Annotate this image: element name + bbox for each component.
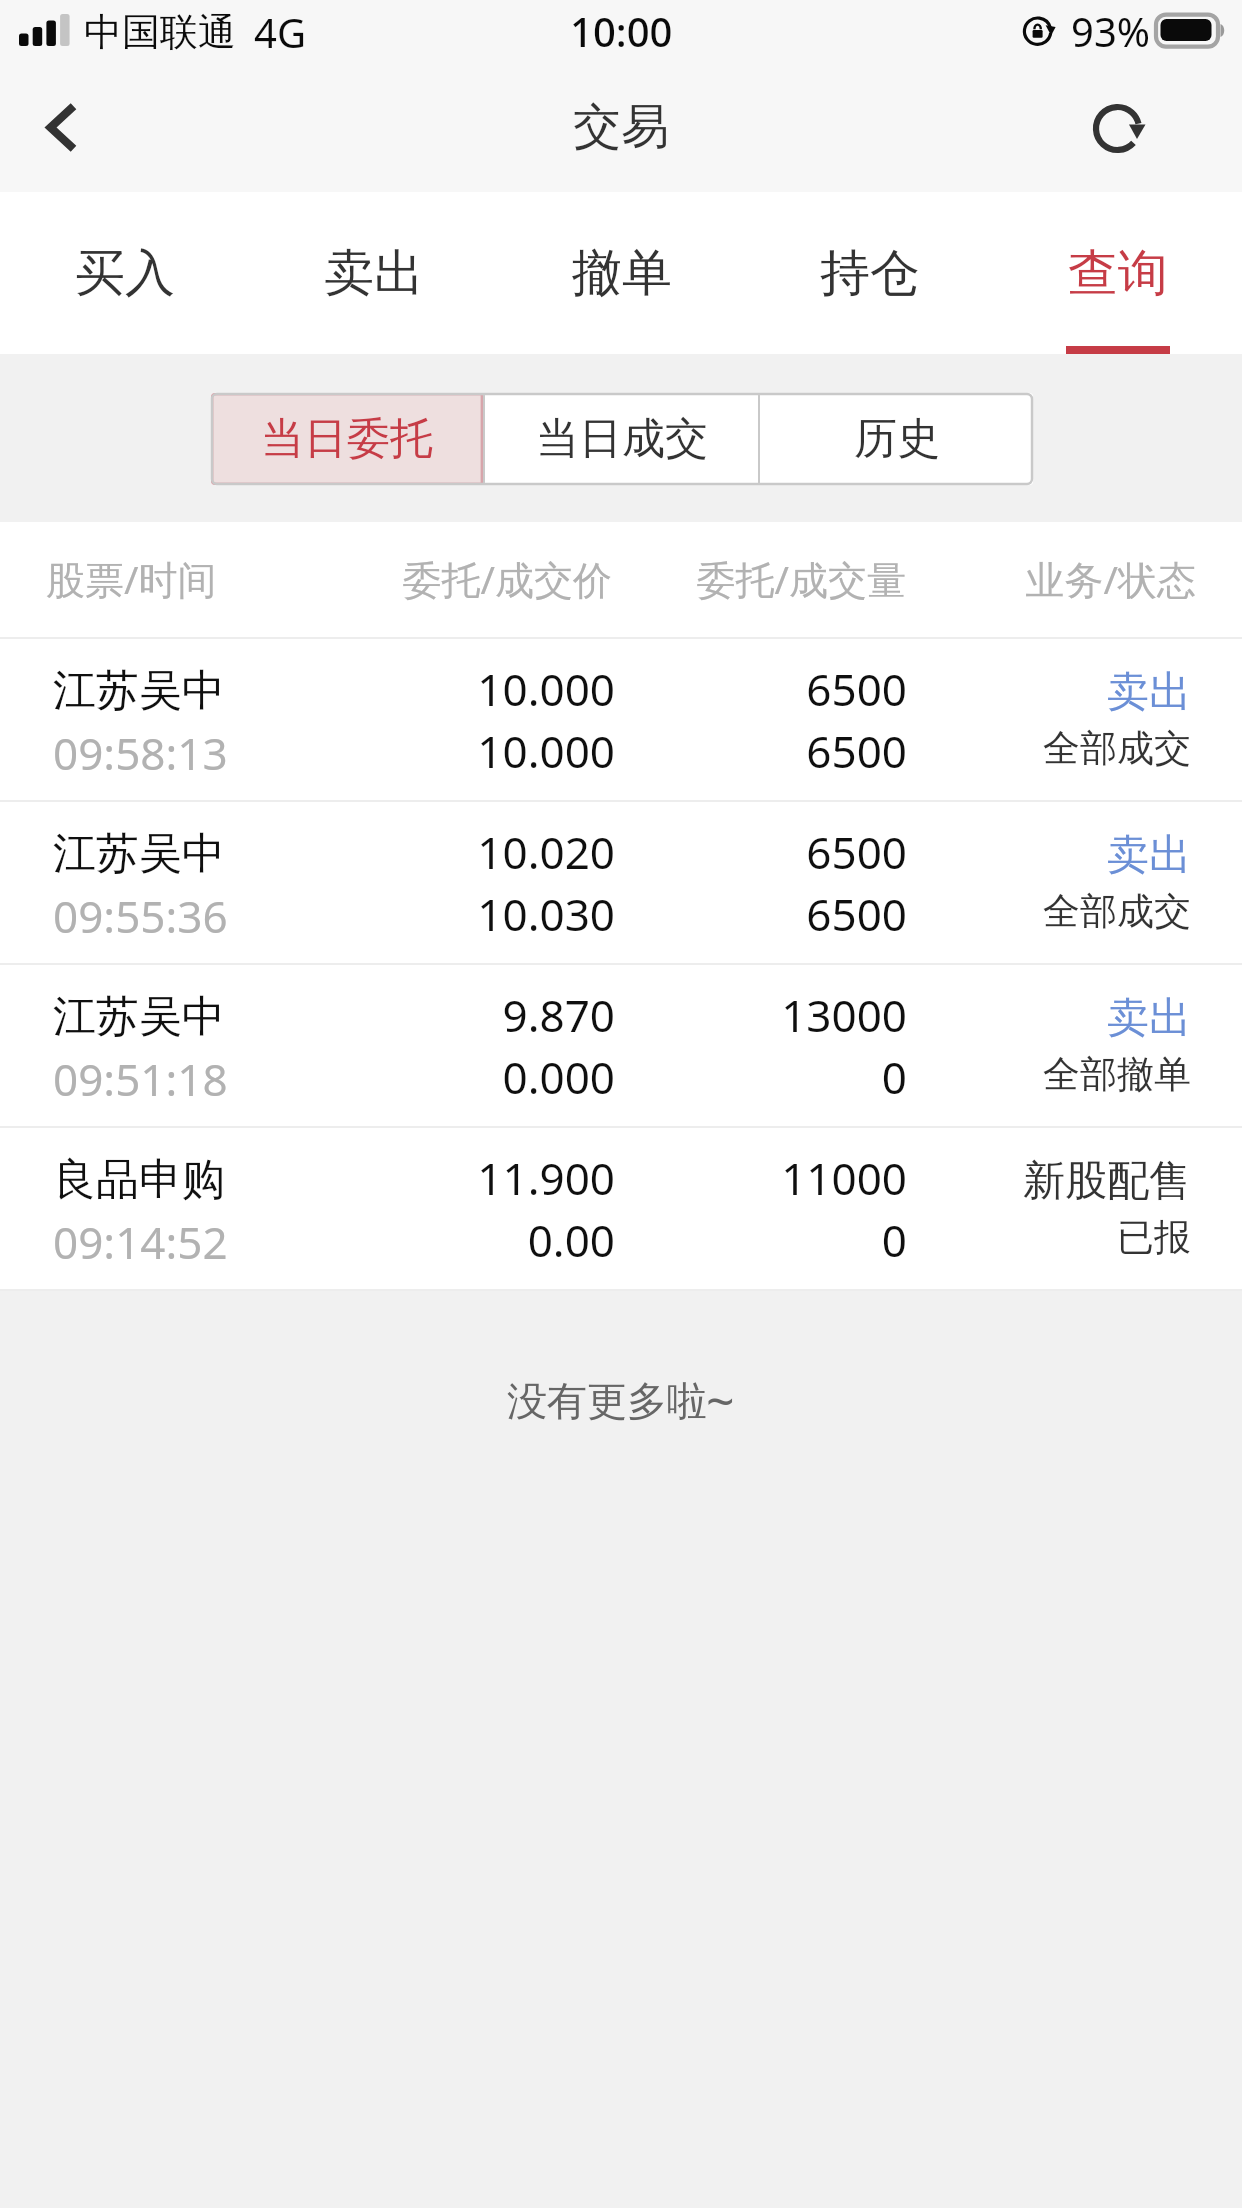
staticText: 0 <box>0 1210 907 1270</box>
staticText: 持仓 <box>820 242 920 305</box>
staticText: 委托/成交价 <box>0 552 612 605</box>
staticText: 0.00 <box>0 1210 615 1270</box>
staticText: 新股配售 <box>0 1155 1191 1208</box>
button[interactable]: 持仓 <box>746 192 994 354</box>
staticText: 11.900 <box>0 1148 615 1208</box>
staticText: 委托/成交量 <box>0 552 906 605</box>
staticText: 全部撤单 <box>0 1051 1191 1098</box>
button[interactable]: 历史 <box>760 393 1033 485</box>
staticText: 江苏吴中 <box>53 827 225 881</box>
button[interactable]: 江苏吴中 <box>0 639 1242 802</box>
staticText: 已报 <box>0 1214 1191 1261</box>
button[interactable]: 江苏吴中 <box>0 965 1242 1128</box>
button[interactable]: 当日成交 <box>485 393 758 485</box>
button[interactable]: 良品申购 <box>0 1128 1242 1291</box>
staticText: 09:58:13 <box>53 723 228 783</box>
staticText: 93% <box>1071 4 1150 58</box>
button[interactable]: 江苏吴中 <box>0 802 1242 965</box>
staticText: 卖出 <box>0 992 1191 1045</box>
staticText: 10.000 <box>0 659 615 719</box>
staticText: 10:00 <box>570 4 673 58</box>
staticText: 没有更多啦 <box>507 1376 707 1426</box>
staticText: 6500 <box>0 822 907 882</box>
staticText: 09:14:52 <box>53 1212 228 1272</box>
staticText: 09:55:36 <box>53 886 228 946</box>
staticText: 卖出 <box>0 829 1191 882</box>
staticText: 0 <box>0 1047 907 1107</box>
button[interactable]: Back <box>0 64 110 192</box>
staticText: ~ <box>706 1366 735 1434</box>
staticText: 11000 <box>0 1148 907 1208</box>
staticText: 买入 <box>75 242 175 305</box>
staticText: 当日委托 <box>261 412 433 466</box>
button[interactable]: 卖出 <box>249 192 498 354</box>
staticText: 09:51:18 <box>53 1049 228 1109</box>
staticText: 4G <box>254 5 306 59</box>
staticText: 6500 <box>0 721 907 781</box>
staticText: 10.000 <box>0 721 615 781</box>
staticText: 交易 <box>573 97 669 157</box>
button[interactable]: 当日委托 <box>211 393 483 485</box>
staticText: 历史 <box>854 412 940 466</box>
button[interactable]: Refresh <box>1072 64 1242 192</box>
staticText: 全部成交 <box>0 725 1191 772</box>
staticText: 9.870 <box>0 985 615 1045</box>
staticText: 10.020 <box>0 822 615 882</box>
button[interactable]: 撤单 <box>498 192 746 354</box>
staticText: 中国联通 <box>84 8 236 56</box>
staticText: 良品申购 <box>53 1153 225 1207</box>
staticText: 撤单 <box>572 242 672 305</box>
staticText: 卖出 <box>324 242 424 305</box>
staticText: 股票/时间 <box>46 552 217 605</box>
staticText: 卖出 <box>0 666 1191 719</box>
button[interactable]: 查询 <box>994 192 1242 354</box>
staticText: 全部成交 <box>0 888 1191 935</box>
staticText: 查询 <box>1068 242 1168 305</box>
button[interactable]: 买入 <box>0 192 249 354</box>
staticText: 当日成交 <box>536 412 708 466</box>
staticText: 6500 <box>0 884 907 944</box>
staticText: 江苏吴中 <box>53 990 225 1044</box>
staticText: 13000 <box>0 985 907 1045</box>
staticText: 江苏吴中 <box>53 664 225 718</box>
staticText: 0.000 <box>0 1047 615 1107</box>
staticText: 6500 <box>0 659 907 719</box>
staticText: 业务/状态 <box>0 552 1196 605</box>
staticText: 10.030 <box>0 884 615 944</box>
